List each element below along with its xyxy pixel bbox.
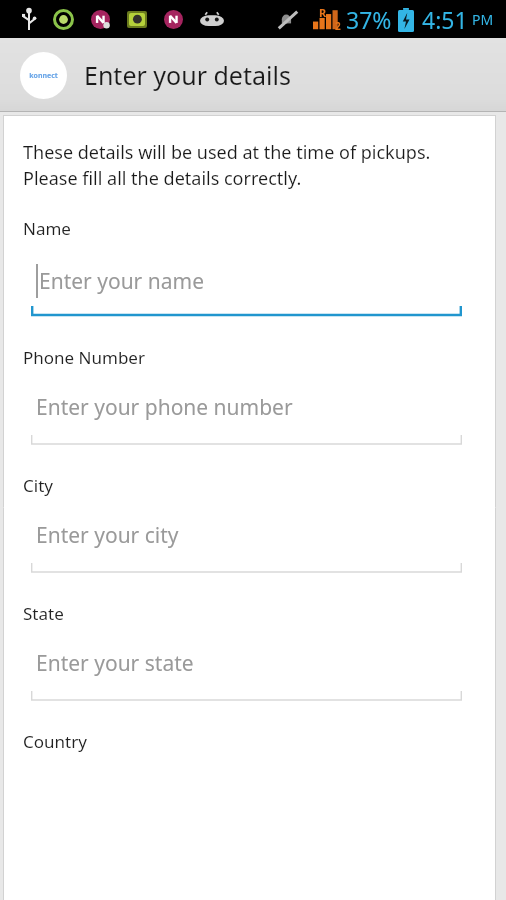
staticText: R: [319, 5, 327, 20]
staticText: Enter your phone number: [36, 393, 293, 422]
staticText: Name: [23, 217, 71, 240]
staticText: Enter your state: [36, 649, 194, 678]
button[interactable]: Enter your city: [23, 521, 478, 575]
button[interactable]: App logo, navigate up: [20, 52, 67, 99]
staticText: Country: [23, 730, 87, 753]
staticText: Phone Number: [23, 346, 145, 369]
staticText: PM: [472, 10, 494, 29]
staticText: These details will be used at the time o…: [23, 140, 478, 190]
staticText: Enter your city: [36, 521, 179, 550]
staticText: 4:51: [422, 4, 468, 35]
staticText: 37%: [346, 4, 392, 35]
staticText: 2: [335, 19, 341, 33]
staticText: Enter your details: [84, 58, 291, 92]
staticText: konnect: [29, 71, 58, 81]
button[interactable]: Enter your state: [23, 649, 478, 703]
staticText: City: [23, 474, 53, 497]
staticText: State: [23, 602, 64, 625]
button[interactable]: Enter your phone number: [23, 393, 478, 447]
staticText: Enter your name: [39, 267, 204, 296]
button[interactable]: Enter your name: [23, 264, 478, 318]
